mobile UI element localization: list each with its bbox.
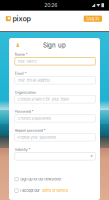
button[interactable]: Repeat your password (15, 133, 95, 141)
staticText: terms of service (42, 188, 68, 193)
button[interactable]: Sign up for our newsletter (15, 177, 95, 181)
button[interactable]: Choose a password (15, 114, 95, 122)
staticText: Email * (15, 71, 27, 76)
button[interactable] (15, 152, 95, 160)
staticText: Name * (15, 52, 28, 57)
staticText: Your email address (17, 78, 50, 83)
button[interactable]: I accept our (15, 188, 95, 193)
button[interactable]: Log in (84, 16, 102, 22)
staticText: 20:26 (44, 2, 57, 8)
staticText: pixop (12, 14, 30, 23)
staticText: Choose a password (17, 116, 50, 121)
staticText: Repeat password * (15, 128, 46, 133)
staticText: Sign up (43, 41, 66, 49)
staticText: Industry * (15, 147, 31, 152)
staticText: Your name (17, 59, 36, 64)
staticText: Log in (86, 16, 99, 21)
button[interactable]: Your email address (15, 76, 95, 84)
staticText: Sign up for our newsletter (20, 177, 61, 181)
staticText: I accept our (20, 188, 40, 193)
button[interactable]: Choose a name for your team (15, 95, 95, 103)
staticText: Organization (15, 90, 36, 95)
staticText: Choose a name for your team (17, 97, 69, 102)
staticText: Repeat your password (17, 135, 55, 140)
button[interactable]: pixop (6, 15, 30, 22)
button[interactable]: Your name (15, 57, 95, 65)
staticText: Password * (15, 109, 34, 114)
